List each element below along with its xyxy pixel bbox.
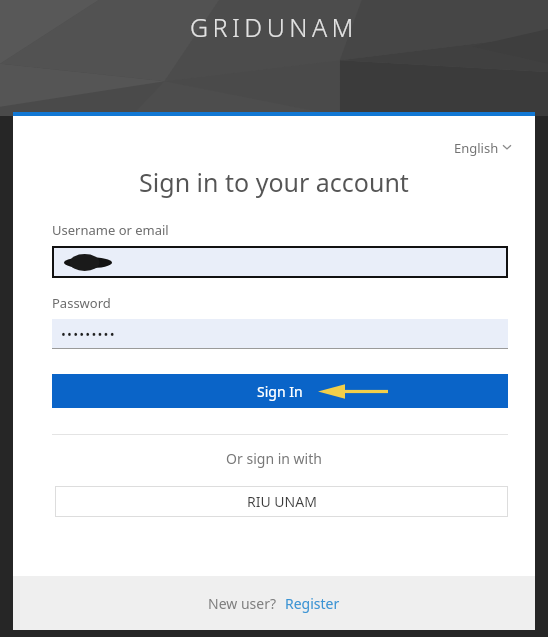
button[interactable]: RIU UNAM [55,486,508,517]
staticText: Register [285,594,340,613]
staticText: Sign In [257,382,303,401]
staticText: GRIDUNAM [190,10,358,44]
staticText: RIU UNAM [247,492,317,511]
button[interactable]: Register [285,594,340,613]
button[interactable]: Sign In [52,374,508,408]
staticText: English [454,139,499,157]
staticText: ••••••••• [61,325,116,343]
staticText: New user? [208,594,277,613]
button[interactable]: ••••••••• [52,319,508,349]
staticText: Password [52,294,111,312]
button[interactable]: English [454,139,511,157]
button[interactable] [52,246,508,278]
staticText: Username or email [52,221,169,239]
staticText: Sign in to your account [13,165,535,199]
staticText: Or sign in with [13,449,535,468]
